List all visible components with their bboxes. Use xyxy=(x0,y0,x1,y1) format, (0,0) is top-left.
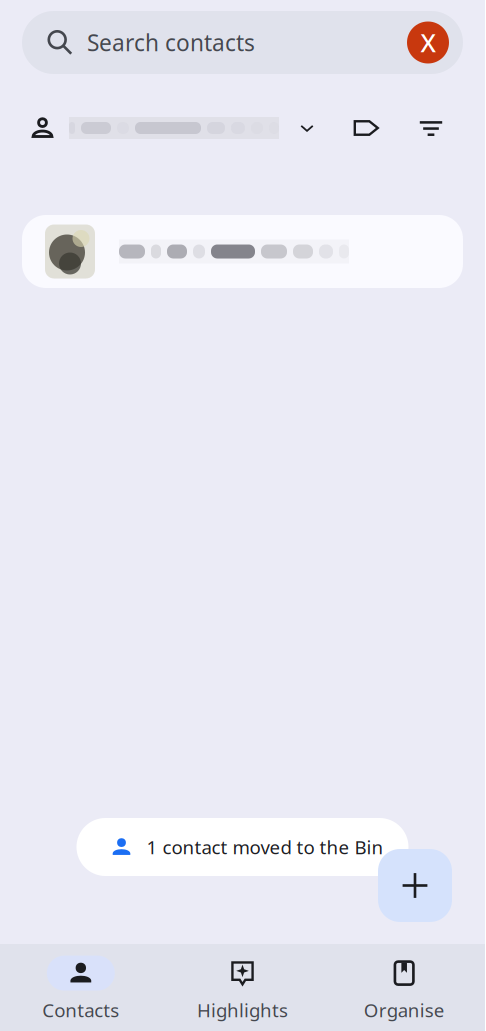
button[interactable]: Search contacts xyxy=(22,11,463,74)
staticText: X xyxy=(420,26,435,59)
button[interactable]: Create contact xyxy=(378,849,452,922)
button[interactable]: Expand xyxy=(284,105,330,151)
button[interactable]: Sort xyxy=(402,105,460,151)
button[interactable]: Organise xyxy=(323,956,485,1022)
button[interactable]: Account xyxy=(30,107,279,148)
button[interactable]: Contacts xyxy=(0,956,162,1022)
button[interactable] xyxy=(22,215,463,288)
staticText: Search contacts xyxy=(87,27,255,57)
button[interactable]: Labels xyxy=(330,105,402,151)
staticText: 1 contact moved to the Bin xyxy=(146,835,383,859)
staticText: Contacts xyxy=(42,998,119,1022)
button[interactable]: Highlights xyxy=(162,956,323,1022)
staticText: Highlights xyxy=(197,998,288,1022)
staticText: Organise xyxy=(364,998,445,1022)
